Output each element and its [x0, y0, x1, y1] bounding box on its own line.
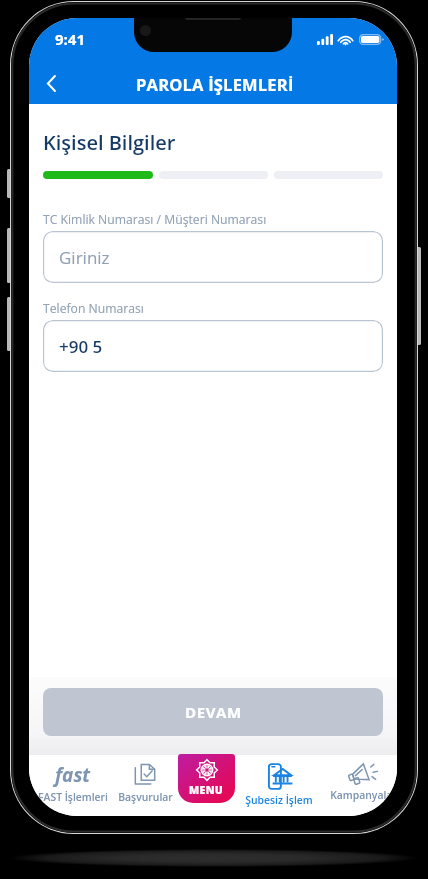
button[interactable]: Back — [30, 62, 72, 104]
button[interactable]: DEVAM — [43, 688, 383, 736]
staticText: +90 5 — [59, 335, 103, 358]
button[interactable]: MENU — [178, 754, 235, 803]
staticText: 9:41 — [55, 29, 86, 49]
staticText: FAST İşlemleri — [38, 790, 108, 804]
staticText: Giriniz — [59, 246, 110, 269]
staticText: Başvurular — [118, 790, 173, 804]
staticText: fast — [55, 762, 91, 788]
button[interactable]: Giriniz — [43, 231, 383, 283]
staticText: Şubesiz İşlem — [245, 793, 313, 807]
staticText: Kampanyalar — [330, 788, 397, 802]
staticText: MENU — [189, 783, 224, 797]
staticText: Kişisel Bilgiler — [43, 129, 176, 156]
staticText: TC Kimlik Numarası / Müşteri Numarası — [43, 211, 267, 228]
button[interactable]: Kampanyalar — [326, 755, 397, 816]
button[interactable]: Başvurular — [108, 755, 182, 816]
staticText: Telefon Numarası — [43, 300, 144, 317]
button[interactable]: fast — [36, 755, 110, 816]
staticText: PAROLA İŞLEMLERİ — [136, 73, 294, 95]
staticText: DEVAM — [185, 702, 242, 722]
button[interactable]: Şubesiz İşlem — [242, 755, 316, 816]
button[interactable]: +90 5 — [43, 320, 383, 372]
